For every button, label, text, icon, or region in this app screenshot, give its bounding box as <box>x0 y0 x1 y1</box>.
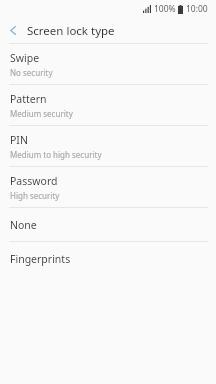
other: Battery full <box>178 5 183 14</box>
staticText: Medium to high security <box>10 149 102 160</box>
staticText: Password <box>10 174 58 188</box>
staticText: 10:00 <box>186 3 208 15</box>
staticText: Swipe <box>10 51 40 65</box>
staticText: High security <box>10 190 60 201</box>
other: Signal strength <box>143 5 151 13</box>
button[interactable]: Fingerprints <box>0 242 216 275</box>
staticText: Screen lock type <box>27 23 115 39</box>
staticText: 100% <box>154 3 176 15</box>
button[interactable]: Navigate up <box>0 18 27 43</box>
staticText: No security <box>10 67 53 78</box>
button[interactable]: None <box>0 208 216 241</box>
button[interactable]: Pattern <box>0 85 216 125</box>
button[interactable]: Password <box>0 167 216 207</box>
button[interactable]: PIN <box>0 126 216 166</box>
staticText: Fingerprints <box>10 252 71 266</box>
staticText: None <box>10 218 37 232</box>
button[interactable]: Swipe <box>0 44 216 84</box>
staticText: Medium security <box>10 108 73 119</box>
staticText: PIN <box>10 133 28 147</box>
staticText: Pattern <box>10 92 47 106</box>
